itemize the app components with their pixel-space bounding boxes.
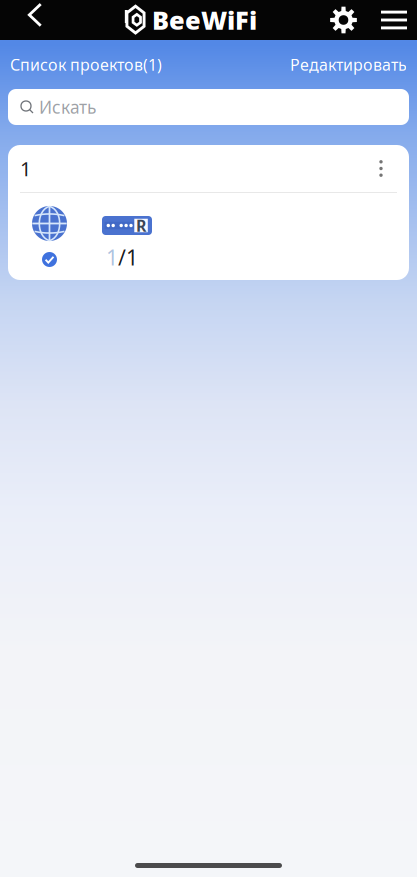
button[interactable]: Network status [16, 206, 83, 280]
button[interactable]: Settings [312, 0, 375, 40]
staticText: /1 [118, 243, 138, 271]
button[interactable]: Routers 1 of 1 [83, 206, 167, 280]
button[interactable]: Back [6, 0, 56, 40]
button[interactable]: Редактировать [290, 54, 407, 75]
staticText: 1 [106, 243, 118, 271]
button[interactable]: Искать [8, 89, 409, 125]
staticText: 1 [20, 155, 31, 182]
staticText: Список проектов(1) [10, 54, 162, 75]
staticText: R [136, 215, 146, 236]
staticText: Редактировать [290, 54, 407, 75]
staticText: Искать [39, 95, 96, 118]
button[interactable]: Menu [375, 0, 413, 40]
staticText: BeeWiFi [152, 3, 257, 37]
button[interactable]: More options [359, 146, 409, 190]
